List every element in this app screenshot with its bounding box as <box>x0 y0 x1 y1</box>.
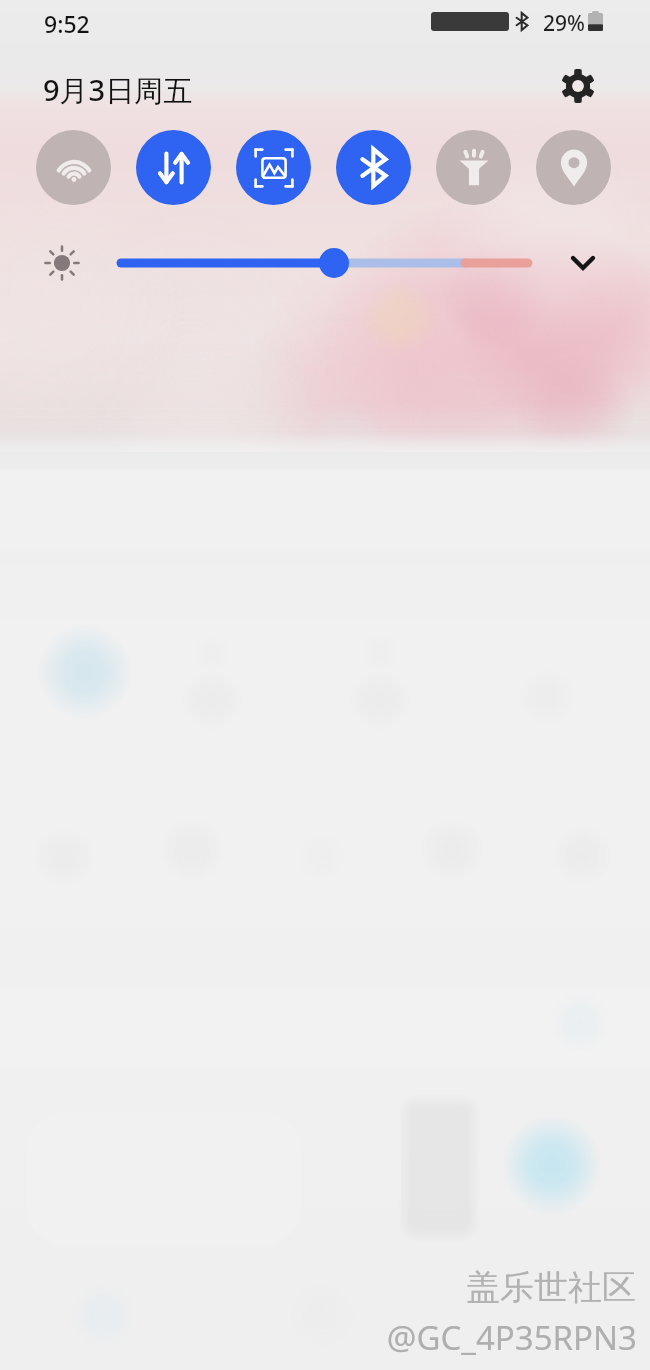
button[interactable]: Expand quick settings <box>561 241 605 285</box>
staticText: 9月3日周五 <box>43 70 193 110</box>
staticText: 9:52 <box>44 8 90 39</box>
button[interactable]: Bluetooth <box>336 130 411 205</box>
staticText: 29% <box>543 9 585 38</box>
button[interactable]: Mobile data <box>136 130 211 205</box>
button[interactable]: Location <box>536 130 611 205</box>
staticText: 盖乐世社区 <box>466 1266 636 1309</box>
button[interactable]: Flashlight <box>436 130 511 205</box>
button[interactable]: Settings <box>556 64 600 108</box>
staticText: @GC_4P35RPN3 <box>386 1315 637 1360</box>
button[interactable]: Wi-Fi <box>36 130 111 205</box>
button[interactable]: Screenshot <box>236 130 311 205</box>
